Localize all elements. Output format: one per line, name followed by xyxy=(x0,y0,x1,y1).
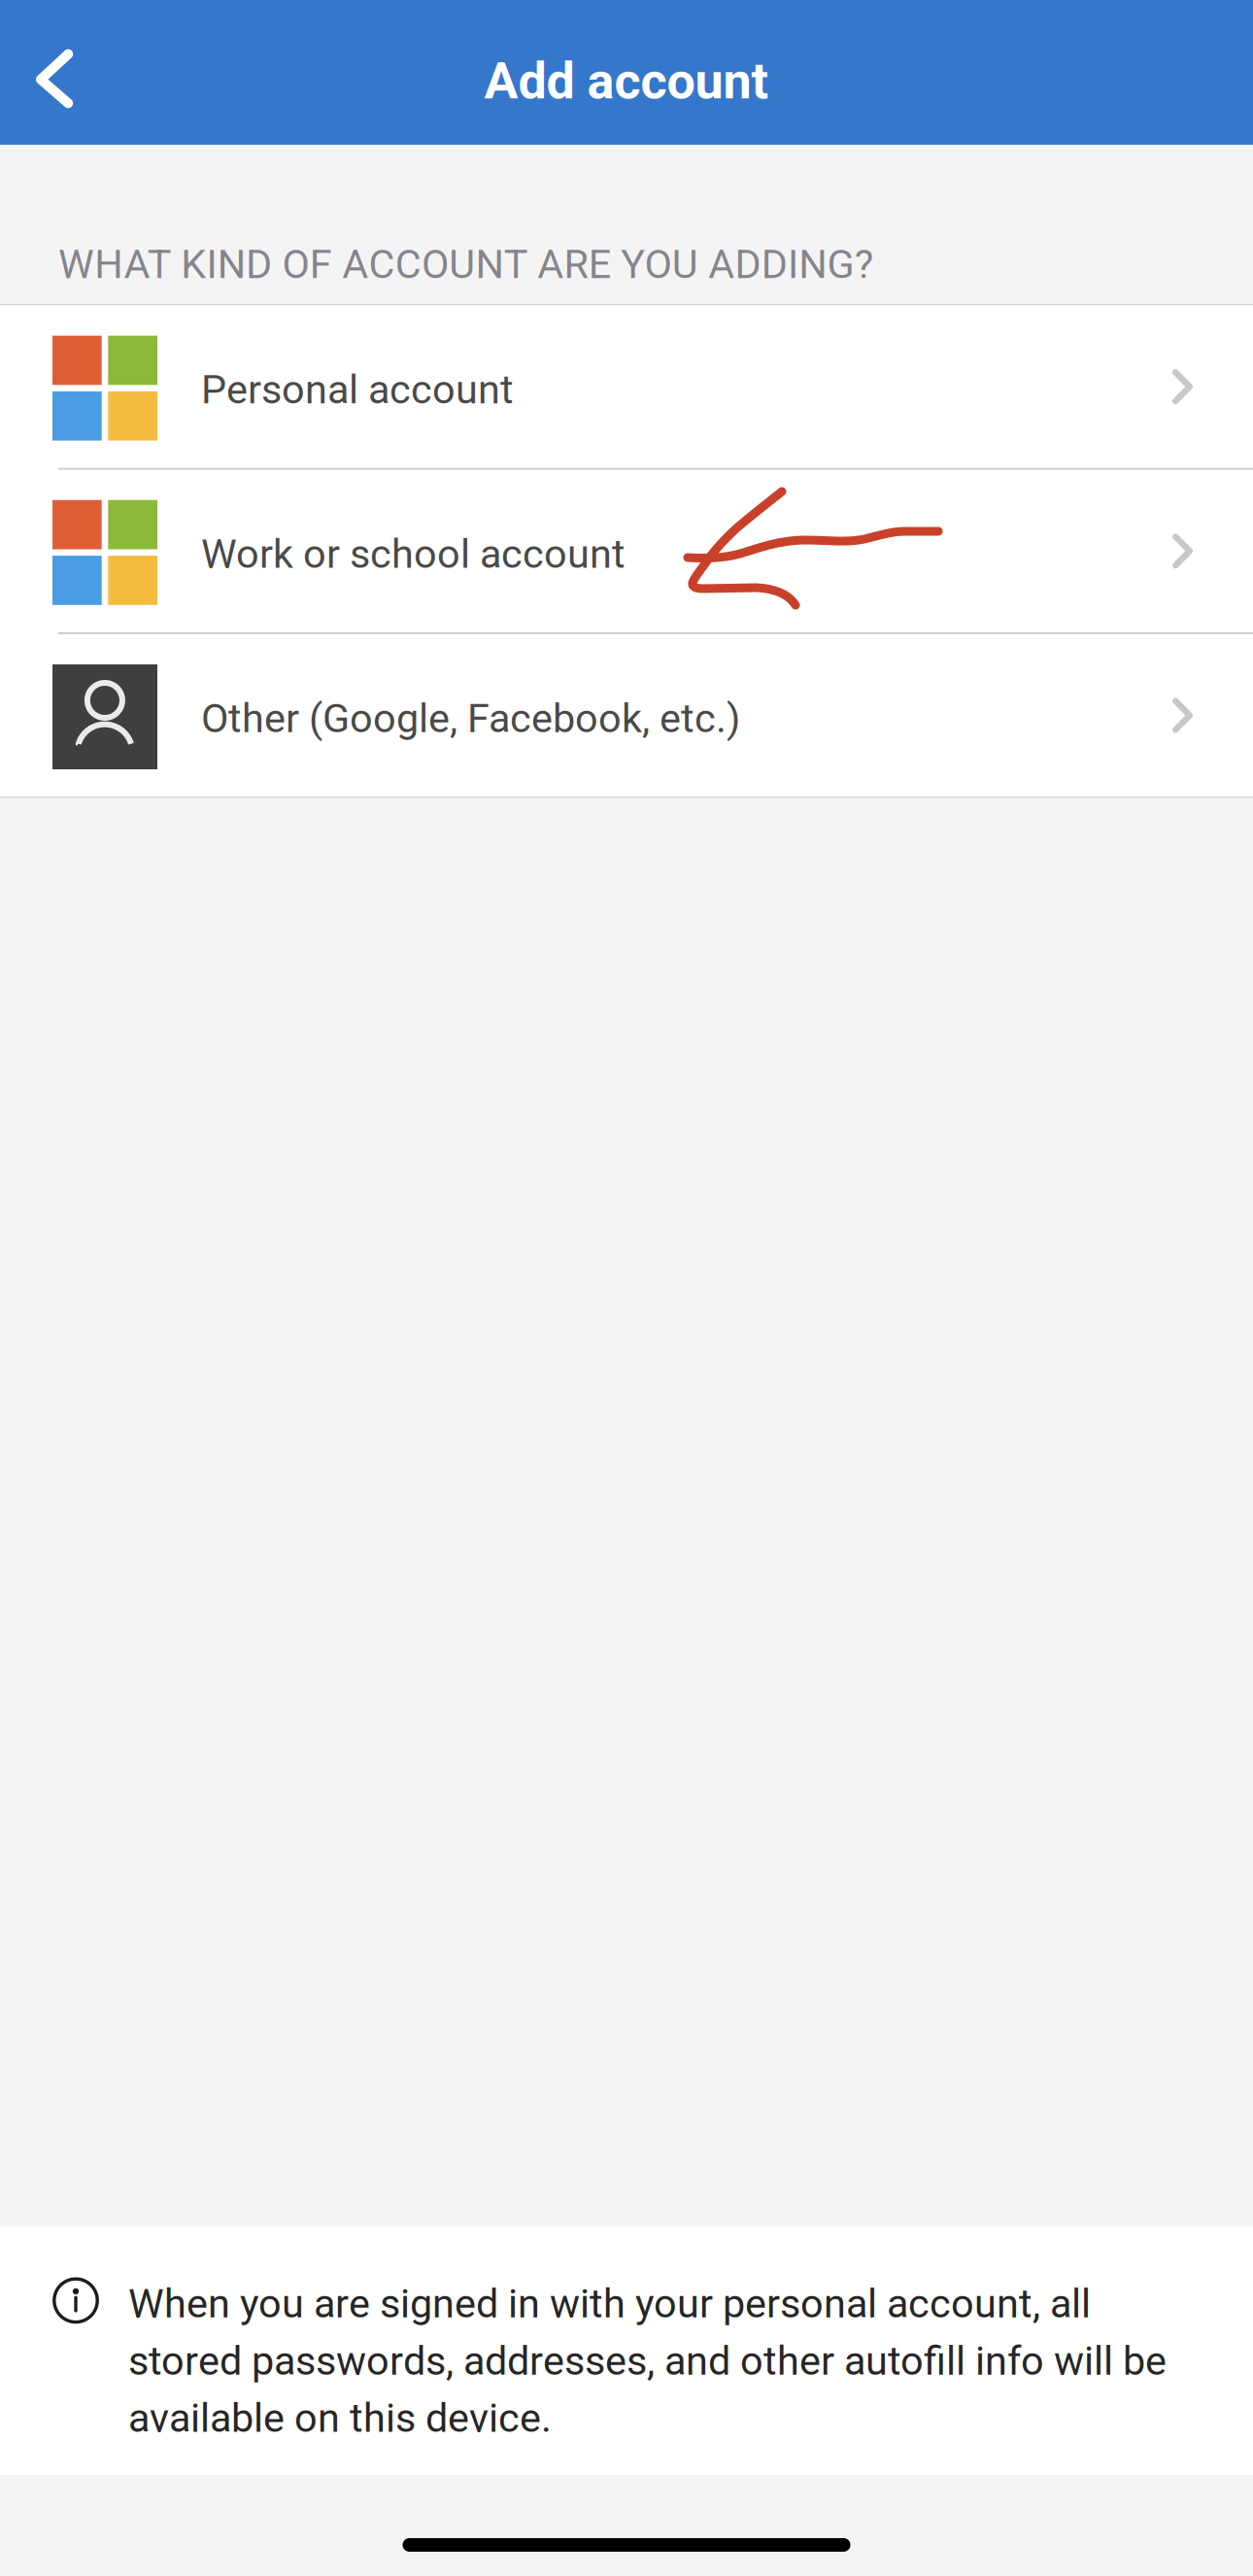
staticText: Personal account xyxy=(201,366,514,413)
staticText: Other (Google, Facebook, etc.) xyxy=(201,695,740,742)
button[interactable]: Personal account xyxy=(0,305,1253,468)
button[interactable]: Work or school account xyxy=(0,470,1253,632)
staticText: When you are signed in with your persona… xyxy=(128,2280,1167,2442)
staticText: WHAT KIND OF ACCOUNT ARE YOU ADDING? xyxy=(58,241,874,288)
staticText: Work or school account xyxy=(201,530,626,577)
staticText: Add account xyxy=(484,51,769,111)
button[interactable]: Back xyxy=(0,0,136,145)
button[interactable]: Other (Google, Facebook, etc.) xyxy=(0,634,1253,797)
